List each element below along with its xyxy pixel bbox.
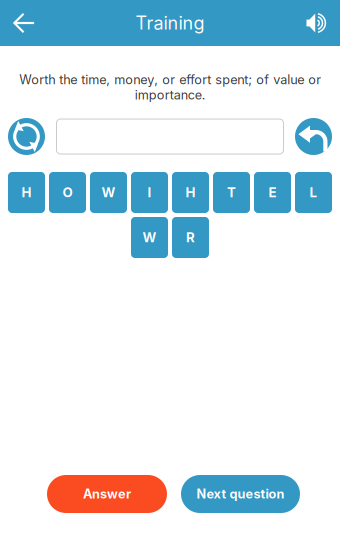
button[interactable]: Answer (47, 475, 167, 513)
staticText: Training (135, 12, 204, 34)
button[interactable]: T (213, 172, 250, 213)
staticText: R (186, 229, 195, 245)
staticText: W (142, 229, 156, 245)
staticText: Answer (83, 486, 131, 502)
button[interactable]: O (49, 172, 86, 213)
button[interactable]: W (131, 217, 168, 258)
button[interactable]: R (172, 217, 209, 258)
staticText: Next question (196, 486, 284, 502)
button[interactable]: E (254, 172, 291, 213)
staticText: E (268, 184, 276, 200)
button[interactable]: Play pronunciation (292, 0, 340, 46)
button[interactable]: Shuffle letters (8, 118, 45, 155)
staticText: I (147, 184, 151, 200)
staticText: Worth the time, money, or effort spent; … (19, 72, 321, 103)
staticText: O (62, 184, 72, 200)
button[interactable]: W (90, 172, 127, 213)
staticText: W (101, 184, 115, 200)
button[interactable]: I (131, 172, 168, 213)
button[interactable]: Next question (181, 475, 300, 513)
button[interactable]: L (295, 172, 332, 213)
staticText: L (309, 184, 317, 200)
button[interactable]: Undo last letter (295, 118, 332, 155)
staticText: T (227, 184, 236, 200)
button[interactable]: H (8, 172, 45, 213)
button[interactable]: H (172, 172, 209, 213)
staticText: H (21, 184, 31, 200)
button[interactable]: Back (0, 0, 48, 46)
staticText: H (185, 184, 195, 200)
